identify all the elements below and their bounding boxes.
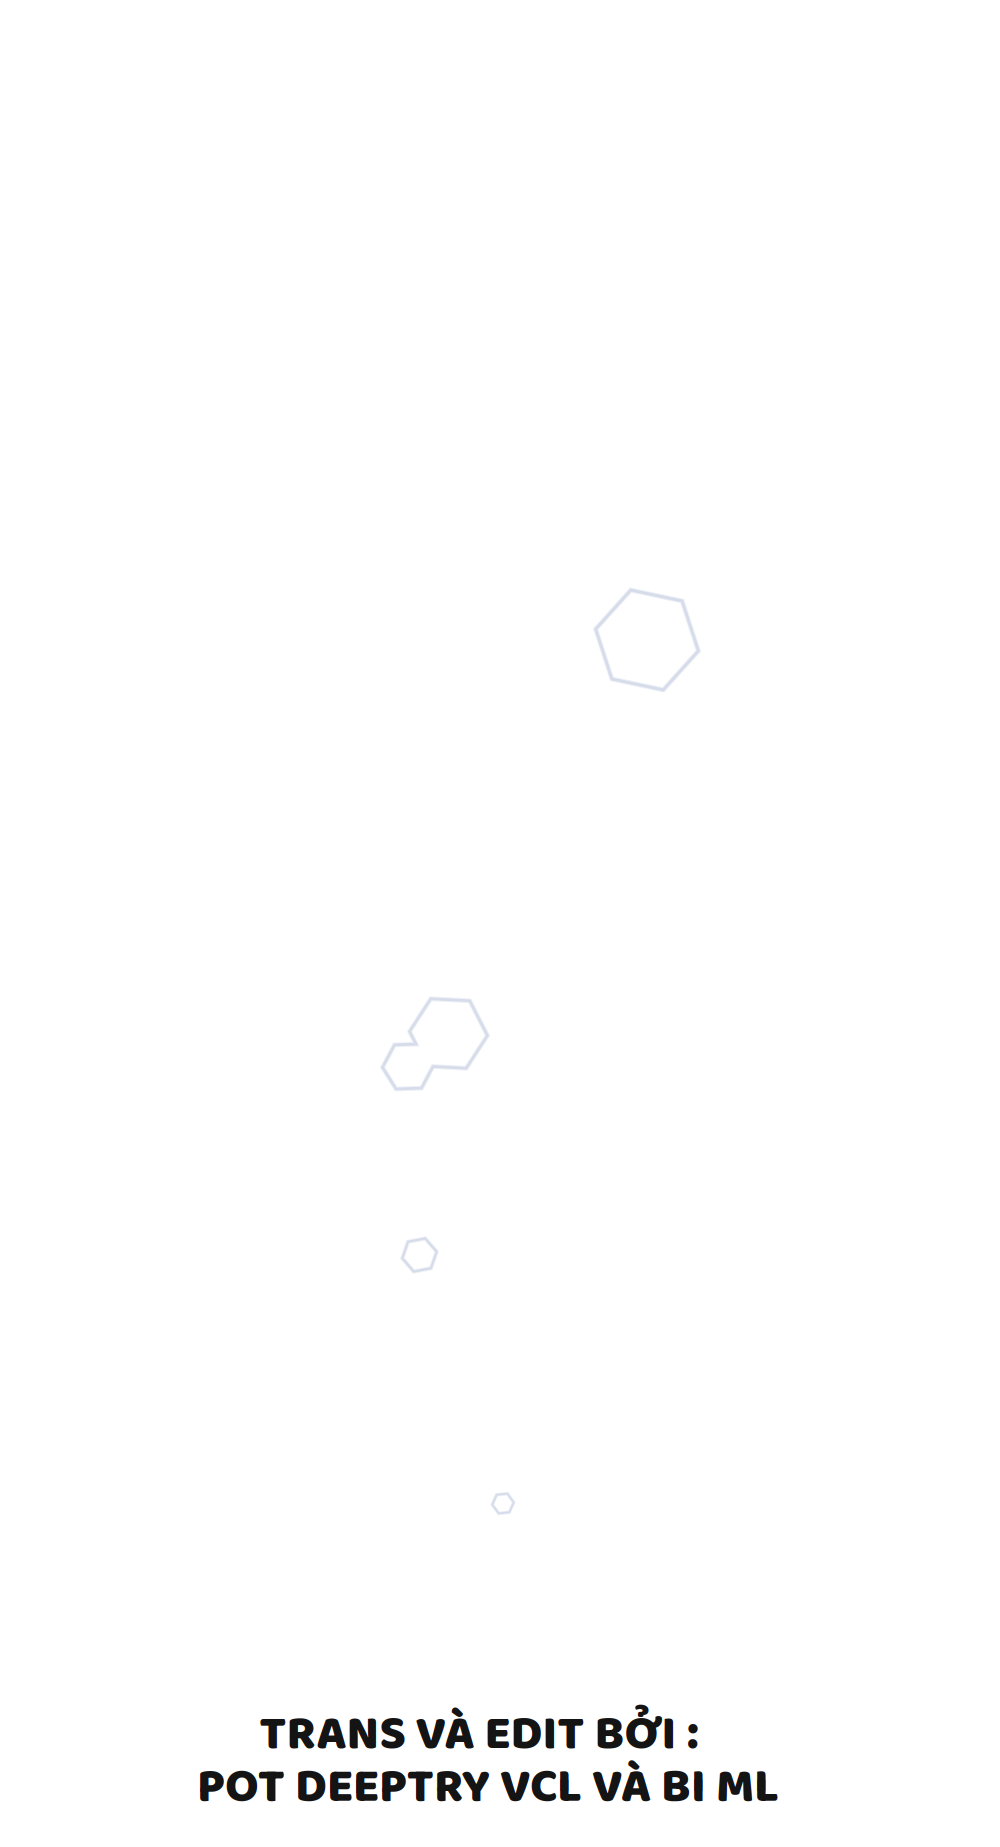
staticText: TRANS VÀ EDIT BỞI :: [259, 1696, 698, 1773]
staticText: POT DEEPTRY VCL VÀ BI ML: [197, 1749, 779, 1826]
